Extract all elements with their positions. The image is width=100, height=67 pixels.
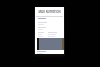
staticText: MILK NUTRITION <box>38 10 61 14</box>
button[interactable]: Document page <box>35 7 64 54</box>
